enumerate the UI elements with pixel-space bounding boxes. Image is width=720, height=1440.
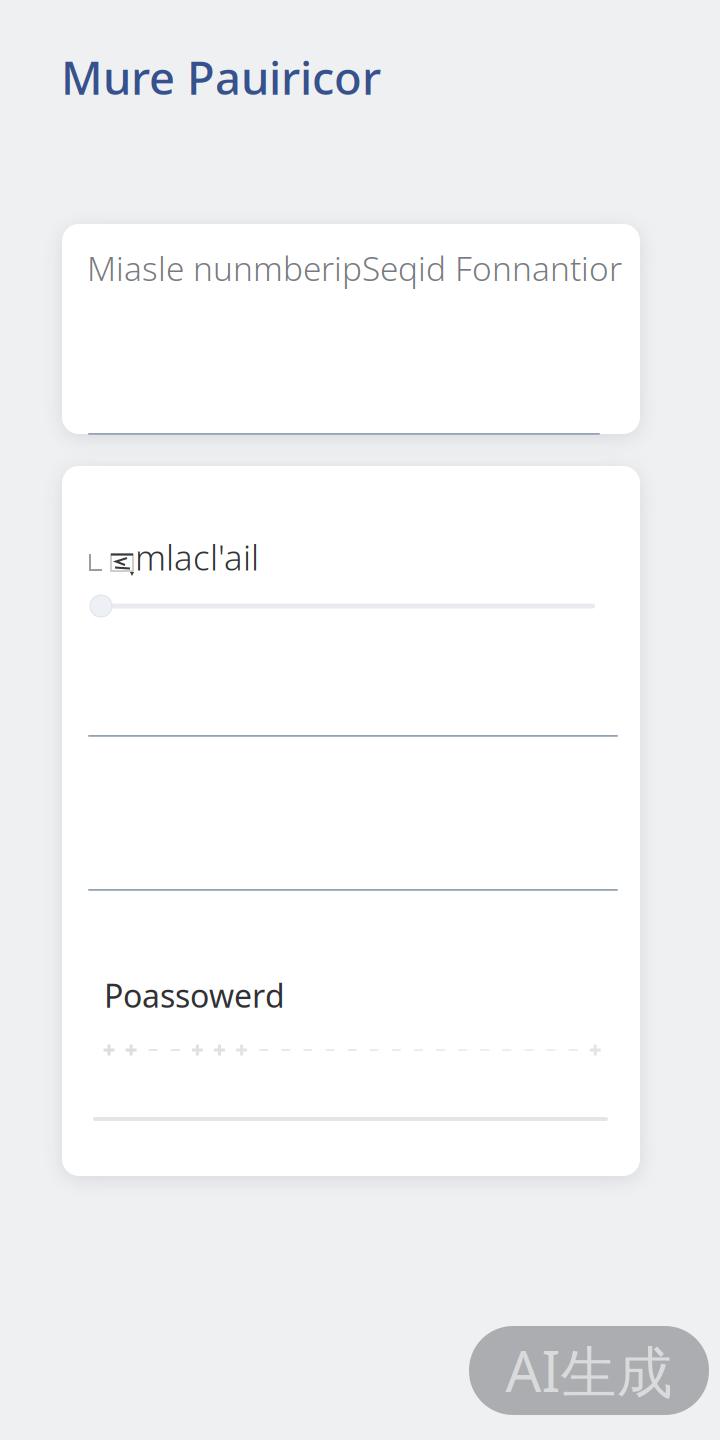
staticText: AI生成 <box>505 1333 672 1408</box>
staticText: mlacl'ail <box>135 534 259 580</box>
button[interactable]: mlacl'ail <box>89 534 259 580</box>
button[interactable]: Miasle nunmberipSeqid Fonnantior <box>87 247 627 289</box>
staticText: Mure Pauiricor <box>61 47 381 107</box>
button[interactable]: Adjust value <box>90 595 595 617</box>
staticText: Miasle nunmberipSeqid Fonnantior <box>87 246 622 290</box>
staticText: Poassowerd <box>104 974 285 1016</box>
